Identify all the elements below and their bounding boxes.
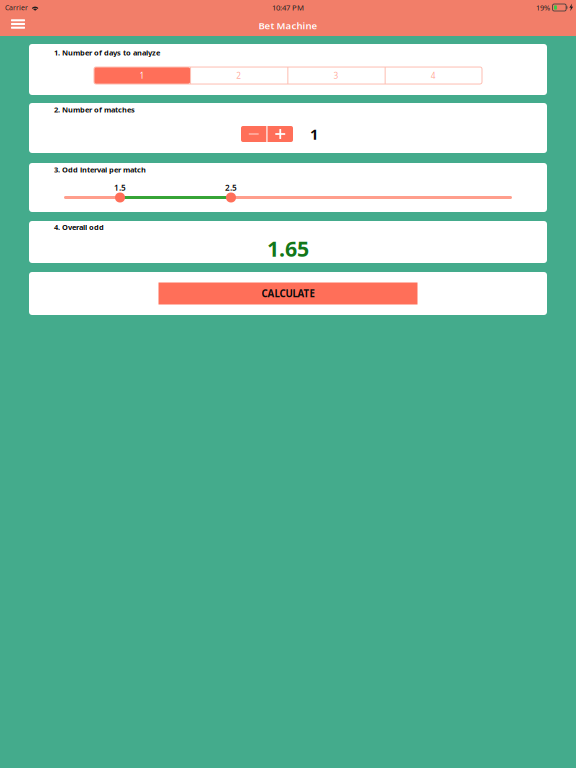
staticText: 1: [139, 70, 144, 81]
button[interactable]: Lower odd: [115, 192, 125, 202]
staticText: 1.65: [267, 234, 309, 263]
staticText: 3. Odd interval per match: [54, 164, 146, 175]
button[interactable]: 3: [287, 67, 385, 84]
staticText: 10:47 PM: [272, 2, 304, 13]
staticText: 4: [431, 70, 436, 81]
button[interactable]: CALCULATE: [158, 282, 417, 304]
staticText: 19%: [536, 2, 550, 13]
staticText: 4. Overall odd: [54, 222, 104, 232]
staticText: 2: [236, 70, 241, 81]
staticText: 2. Number of matches: [54, 104, 135, 115]
staticText: 2.5: [225, 182, 237, 193]
button[interactable]: Increase: [267, 126, 293, 142]
staticText: 3: [333, 70, 338, 81]
staticText: Bet Machine: [258, 19, 317, 32]
button[interactable]: 4: [385, 67, 482, 84]
button[interactable]: 1: [94, 67, 190, 84]
button[interactable]: Upper odd: [226, 192, 236, 202]
button[interactable]: Decrease: [241, 126, 266, 142]
staticText: Carrier: [5, 3, 28, 12]
button[interactable]: Menu: [5, 14, 31, 33]
button[interactable]: 2: [190, 67, 287, 84]
staticText: 1.5: [114, 182, 126, 193]
staticText: CALCULATE: [261, 287, 314, 300]
staticText: 1. Number of days to analyze: [54, 47, 160, 58]
staticText: 1: [310, 124, 318, 144]
